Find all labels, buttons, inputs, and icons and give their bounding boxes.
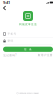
- button[interactable]: Back: [1, 5, 8, 11]
- button[interactable]: 登 录: [3, 47, 53, 52]
- staticText: 手机号: [8, 32, 17, 36]
- staticText: 9:41: [3, 0, 10, 5]
- button[interactable]: 忘记密码?: [3, 53, 16, 57]
- staticText: 登 录: [24, 48, 32, 51]
- staticText: 密码: [8, 39, 14, 42]
- staticText: 忘记密码?: [3, 53, 16, 57]
- staticText: 登录即表示同意《用户协议》和《隐私政策》: [19, 92, 39, 94]
- button[interactable]: 新用户注册: [38, 53, 53, 57]
- staticText: 同城优享生活: [19, 23, 37, 26]
- button[interactable]: 登录即表示同意《用户协议》和《隐私政策》: [17, 91, 39, 95]
- staticText: 新用户注册: [38, 53, 53, 57]
